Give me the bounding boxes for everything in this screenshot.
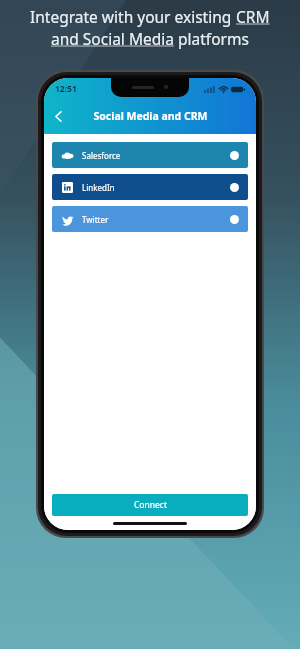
staticText: CRM (236, 6, 270, 27)
staticText: platforms (174, 28, 249, 49)
staticText: Connect (134, 499, 167, 511)
button[interactable]: LinkedIn (52, 174, 248, 200)
staticText: Twitter (82, 214, 109, 225)
staticText: Social Media and CRM (93, 109, 208, 123)
staticText: and Social Media (51, 28, 174, 49)
button[interactable]: Salesforce (52, 142, 248, 168)
button[interactable]: Twitter (52, 206, 248, 232)
button[interactable]: Connect (52, 494, 248, 516)
staticText: Salesforce (82, 150, 121, 161)
staticText: 12:51 (55, 83, 77, 95)
button[interactable]: Back (44, 102, 72, 130)
staticText: Integrate with your existing (30, 6, 236, 27)
staticText: LinkedIn (82, 182, 115, 193)
